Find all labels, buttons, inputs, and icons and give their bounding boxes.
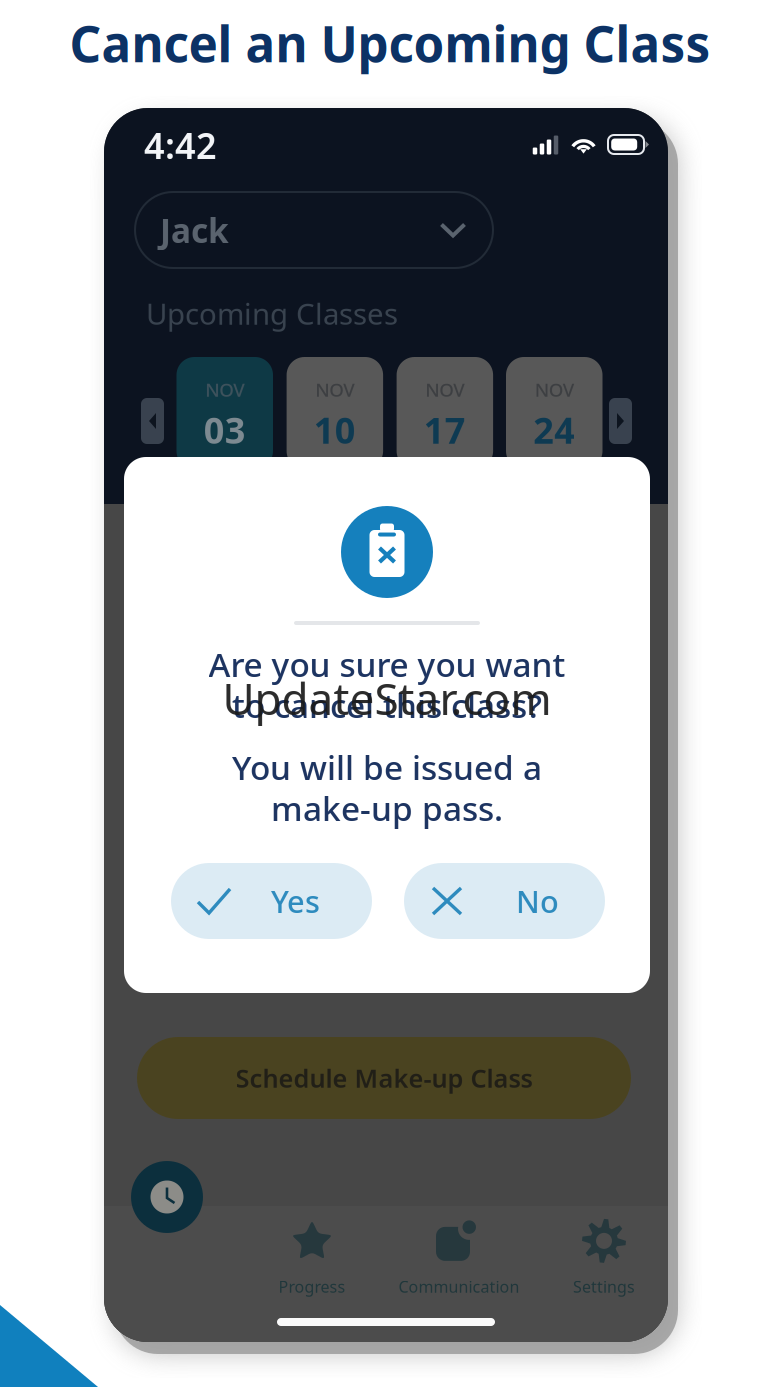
staticText: You will be issued a: [232, 745, 542, 789]
staticText: to cancel this class?: [232, 683, 542, 727]
staticText: Schedule Make-up Class: [235, 1061, 532, 1095]
staticText: NOV: [315, 377, 354, 402]
button[interactable]: Schedule Make-up Class: [137, 1037, 631, 1119]
staticText: Communication: [398, 1276, 519, 1297]
staticText: 03: [204, 406, 246, 454]
staticText: NOV: [205, 377, 244, 402]
staticText: NOV: [425, 377, 464, 402]
staticText: 4:42: [144, 121, 217, 169]
staticText: Jack: [160, 208, 229, 252]
button[interactable]: NOV: [397, 357, 493, 469]
button[interactable]: NOV: [176, 357, 273, 469]
staticText: 24: [533, 406, 575, 454]
staticText: Settings: [573, 1276, 635, 1297]
button[interactable]: NOV: [506, 357, 602, 469]
button[interactable]: Previous week: [141, 398, 164, 444]
staticText: Progress: [278, 1276, 345, 1297]
staticText: UpdateStar.com: [222, 669, 551, 727]
button[interactable]: Jack: [135, 192, 493, 268]
button[interactable]: Communication: [364, 1214, 554, 1304]
button[interactable]: Class history: [131, 1161, 203, 1233]
staticText: 17: [424, 406, 466, 454]
staticText: Yes: [271, 881, 320, 921]
button[interactable]: Progress: [217, 1214, 407, 1304]
button[interactable]: Yes: [171, 863, 372, 939]
button[interactable]: Settings: [509, 1214, 699, 1304]
button[interactable]: No: [404, 863, 605, 939]
staticText: Are you sure you want: [208, 642, 565, 686]
staticText: Cancel an Upcoming Class: [69, 10, 710, 76]
staticText: No: [516, 881, 559, 921]
button[interactable]: NOV: [287, 357, 383, 469]
button[interactable]: Next week: [609, 398, 632, 444]
staticText: NOV: [535, 377, 574, 402]
staticText: 10: [314, 406, 356, 454]
staticText: make-up pass.: [271, 786, 503, 830]
staticText: Upcoming Classes: [146, 294, 398, 333]
